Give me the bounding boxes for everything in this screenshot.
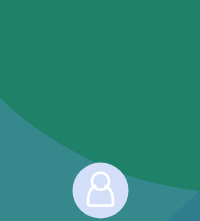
button[interactable]: Profile: [0, 0, 200, 221]
